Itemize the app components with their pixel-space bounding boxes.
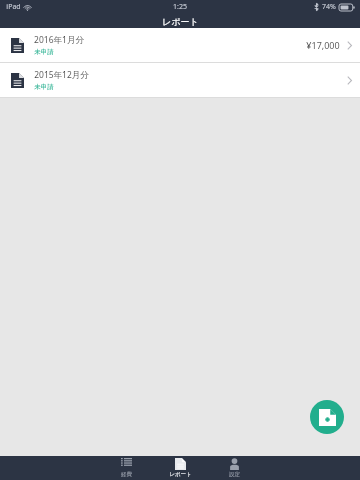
staticText: 2016年1月分 [34,34,84,46]
staticText: iPad [6,2,21,12]
staticText: ¥17,000 [306,39,340,51]
staticText: 経費 [121,471,132,478]
staticText: レポート [162,16,199,27]
button[interactable]: 新しいレポートを作成 [310,400,344,434]
staticText: 2015年12月分 [34,69,89,81]
staticText: レポート [169,471,192,478]
button[interactable]: 経費 [99,458,153,478]
staticText: 74% [322,2,336,12]
staticText: 未申請 [34,83,54,91]
button[interactable]: 2015年12月分 [0,63,360,97]
staticText: 未申請 [34,48,54,56]
button[interactable]: 設定 [207,458,261,478]
staticText: 1:25 [173,2,187,12]
button[interactable]: 2016年1月分 [0,28,360,62]
staticText: 設定 [229,471,240,478]
button[interactable]: レポート [153,458,207,478]
